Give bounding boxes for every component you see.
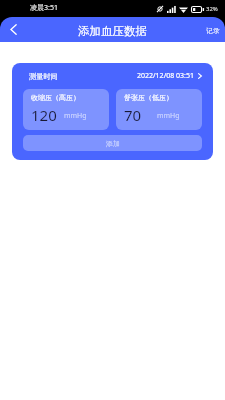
- button[interactable]: 添加: [23, 135, 202, 151]
- staticText: 收缩压（高压）: [31, 93, 80, 102]
- staticText: 添加血压数据: [78, 24, 147, 38]
- staticText: 70: [124, 105, 142, 125]
- staticText: mmHg: [157, 111, 180, 121]
- button[interactable]: 返回: [3, 19, 24, 40]
- button[interactable]: 测量时间: [23, 68, 202, 84]
- staticText: mmHg: [64, 111, 87, 121]
- staticText: 测量时间: [29, 72, 58, 81]
- staticText: 舒张压（低压）: [124, 93, 173, 102]
- button[interactable]: 舒张压（低压）: [116, 89, 202, 130]
- staticText: 记录: [206, 26, 220, 35]
- staticText: 添加: [106, 139, 120, 148]
- staticText: 120: [31, 105, 57, 125]
- button[interactable]: 记录: [198, 20, 225, 39]
- staticText: 32%: [206, 5, 218, 13]
- button[interactable]: 收缩压（高压）: [23, 89, 109, 130]
- staticText: 凌晨3:51: [30, 3, 58, 13]
- staticText: 2022/12/08 03:51: [137, 71, 194, 81]
